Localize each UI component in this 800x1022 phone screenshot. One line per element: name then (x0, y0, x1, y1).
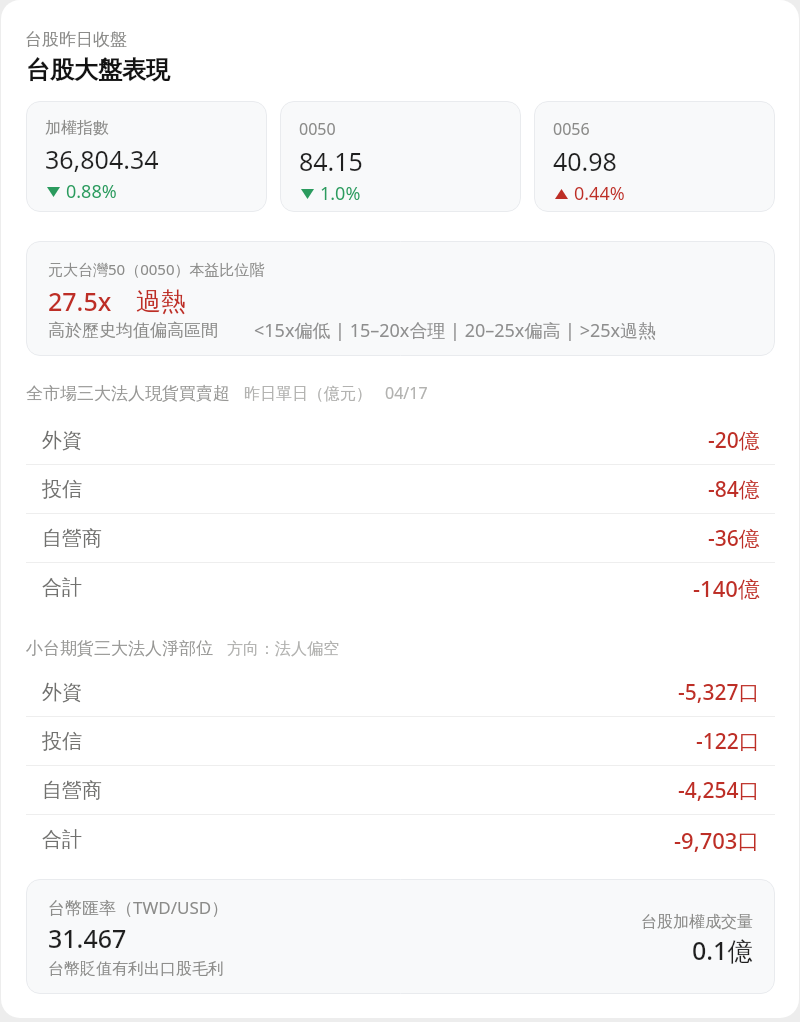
staticText: <15x偏低 | 15–20x合理 | 20–25x偏高 | >25x過熱 (254, 318, 657, 343)
staticText: 昨日單日（億元） (244, 384, 372, 404)
staticText: 台股大盤表現 (26, 55, 170, 85)
staticText: 0056 (553, 118, 590, 140)
staticText: 方向：法人偏空 (227, 639, 339, 659)
button[interactable]: 元大台灣50（0050）本益比位階 (26, 241, 775, 356)
staticText: 27.5x (48, 284, 112, 318)
staticText: 0050 (299, 118, 336, 140)
other: Down (47, 187, 60, 197)
staticText: 台幣貶值有利出口股毛利 (48, 959, 224, 979)
staticText: -36億 (708, 524, 760, 553)
staticText: 投信 (42, 477, 82, 502)
staticText: 合計 (42, 827, 82, 852)
button[interactable]: 台幣匯率（TWD/USD） (26, 879, 775, 994)
staticText: -5,327口 (678, 678, 760, 707)
button[interactable]: 0056 (534, 101, 775, 212)
button[interactable]: 投信 (1, 465, 799, 514)
staticText: -20億 (708, 426, 760, 455)
staticText: 元大台灣50（0050）本益比位階 (48, 259, 265, 279)
staticText: 自營商 (42, 526, 102, 551)
button[interactable]: 全市場三大法人現貨買賣超 (26, 382, 428, 404)
staticText: 0.1億 (692, 933, 753, 967)
staticText: 投信 (42, 729, 82, 754)
staticText: 合計 (42, 575, 82, 600)
staticText: -84億 (708, 475, 760, 504)
staticText: 04/17 (385, 382, 428, 404)
staticText: 小台期貨三大法人淨部位 (26, 638, 213, 659)
button[interactable]: 合計 (1, 563, 799, 612)
button[interactable]: 加權指數 (26, 101, 267, 212)
staticText: 加權指數 (45, 118, 109, 138)
button[interactable]: 投信 (1, 717, 799, 766)
other: Up (555, 189, 568, 199)
staticText: -140億 (693, 573, 760, 603)
button[interactable]: 外資 (1, 416, 799, 465)
staticText: 1.0% (320, 181, 361, 206)
staticText: 84.15 (299, 144, 363, 178)
button[interactable]: 自營商 (1, 514, 799, 563)
staticText: 0.44% (574, 181, 625, 206)
staticText: -9,703口 (674, 825, 760, 855)
staticText: 40.98 (553, 144, 617, 178)
staticText: 高於歷史均值偏高區間 (48, 320, 218, 341)
staticText: 台股加權成交量 (641, 912, 753, 932)
staticText: 台股昨日收盤 (25, 29, 127, 50)
button[interactable]: 小台期貨三大法人淨部位 (26, 638, 339, 659)
staticText: 外資 (42, 680, 82, 705)
staticText: 外資 (42, 428, 82, 453)
staticText: 台幣匯率（TWD/USD） (48, 896, 229, 919)
other: Down (301, 189, 314, 199)
button[interactable]: 外資 (1, 668, 799, 717)
staticText: 過熱 (136, 286, 186, 317)
staticText: 自營商 (42, 778, 102, 803)
button[interactable]: 0050 (280, 101, 521, 212)
staticText: -4,254口 (678, 776, 760, 805)
staticText: 31.467 (48, 921, 127, 955)
staticText: -122口 (696, 727, 760, 756)
staticText: 0.88% (66, 179, 117, 204)
staticText: 全市場三大法人現貨買賣超 (26, 383, 230, 404)
button[interactable]: 自營商 (1, 766, 799, 815)
staticText: 36,804.34 (45, 142, 159, 176)
button[interactable]: 合計 (1, 815, 799, 864)
